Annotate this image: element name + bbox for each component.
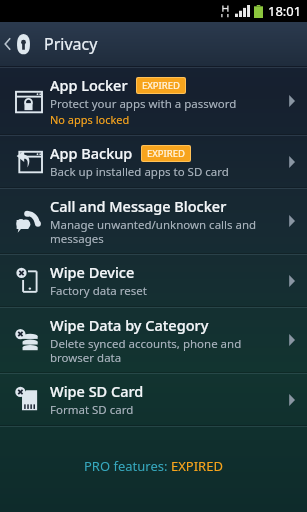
button[interactable]: Wipe Device — [0, 255, 307, 306]
staticText: No apps locked — [50, 112, 130, 127]
staticText: Wipe Device — [50, 262, 135, 282]
staticText: App Locker — [50, 75, 128, 95]
staticText: Wipe SD Card — [50, 381, 144, 401]
staticText: EXPIRED — [142, 79, 180, 92]
staticText: App Backup — [50, 143, 133, 163]
staticText: Format SD card — [50, 402, 134, 418]
button[interactable]: Call and Message Blocker — [0, 189, 307, 253]
staticText: Factory data reset — [50, 283, 147, 299]
staticText: EXPIRED — [147, 147, 185, 160]
button[interactable]: App Locker — [0, 68, 307, 134]
button[interactable]: Wipe SD Card — [0, 374, 307, 425]
staticText: Protect your apps with a password — [50, 96, 237, 112]
staticText: Call and Message Blocker — [50, 196, 227, 216]
staticText: Back up installed apps to SD card — [50, 164, 229, 180]
staticText: PRO features: — [84, 457, 171, 475]
staticText: EXPIRED — [171, 457, 223, 475]
staticText: Delete synced accounts, phone and browse… — [50, 336, 277, 365]
button[interactable]: Navigate up, Privacy — [0, 22, 307, 66]
staticText: Wipe Data by Category — [50, 315, 209, 335]
button[interactable]: App Backup — [0, 136, 307, 187]
button[interactable]: PRO features: — [84, 457, 223, 475]
staticText: Manage unwanted/unknown calls and messag… — [50, 217, 277, 246]
button[interactable]: Wipe Data by Category — [0, 308, 307, 372]
staticText: Privacy — [44, 33, 98, 55]
staticText: 18:01 — [268, 2, 302, 20]
